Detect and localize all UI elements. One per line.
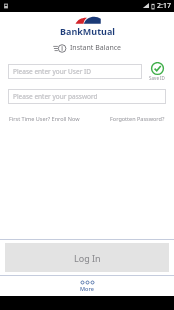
- button[interactable]: Please enter your User ID: [8, 64, 142, 79]
- button[interactable]: Please enter your password: [8, 89, 166, 104]
- staticText: BankMutual: [60, 25, 115, 37]
- button[interactable]: First Time User? Enroll Now: [8, 113, 81, 124]
- staticText: Save ID: [149, 75, 165, 81]
- staticText: Forgotten Password?: [110, 115, 165, 122]
- staticText: Please enter your User ID: [13, 67, 91, 76]
- staticText: More: [80, 285, 94, 292]
- staticText: Instant Balance: [70, 43, 122, 53]
- staticText: 2:17: [157, 1, 171, 11]
- button[interactable]: More: [0, 281, 174, 292]
- button[interactable]: Forgotten Password?: [109, 113, 166, 124]
- staticText: First Time User? Enroll Now: [9, 115, 80, 122]
- staticText: Log In: [74, 252, 101, 264]
- button[interactable]: Instant Balance: [0, 43, 174, 53]
- button[interactable]: Save ID: [148, 62, 166, 81]
- staticText: Please enter your password: [13, 92, 98, 101]
- button[interactable]: Log In: [5, 243, 169, 272]
